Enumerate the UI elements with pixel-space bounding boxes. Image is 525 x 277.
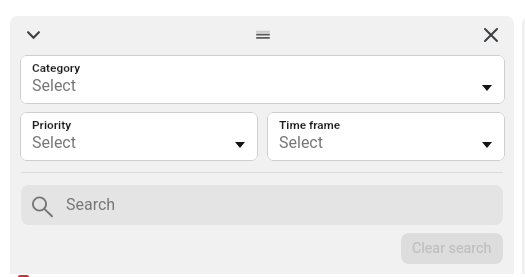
staticText: Category (32, 61, 81, 75)
button[interactable]: Category (20, 55, 505, 104)
button[interactable]: Clear search (401, 233, 503, 264)
staticText: Select (32, 133, 76, 152)
button[interactable]: Search (21, 185, 503, 225)
staticText: Select (279, 133, 323, 152)
staticText: Clear search (412, 240, 492, 257)
staticText: Search (66, 195, 116, 214)
staticText: Priority (32, 118, 72, 132)
staticText: Select (32, 76, 76, 95)
button[interactable]: Drag handle (249, 21, 277, 49)
button[interactable]: Priority (20, 112, 258, 161)
staticText: Time frame (279, 118, 341, 132)
button[interactable]: Close (477, 21, 505, 49)
button[interactable]: Time frame (267, 112, 505, 161)
button[interactable]: Collapse (19, 21, 47, 49)
